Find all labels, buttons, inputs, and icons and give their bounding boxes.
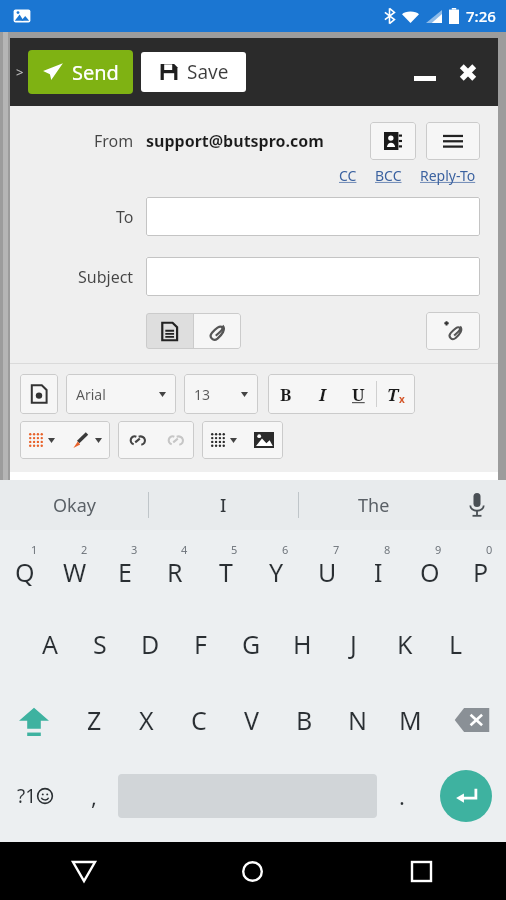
staticText: C [191, 703, 207, 737]
staticText: G [242, 627, 261, 661]
button[interactable]: Voice input [448, 480, 506, 530]
staticText: 1 [31, 542, 38, 557]
button[interactable]: Home [168, 842, 337, 900]
button[interactable]: Shift [0, 682, 68, 758]
button[interactable]: U [340, 375, 376, 413]
staticText: J [350, 627, 357, 661]
staticText: X [139, 703, 154, 737]
button[interactable]: G [226, 606, 277, 682]
staticText: N [348, 703, 368, 737]
button[interactable]: V [225, 682, 278, 758]
button[interactable]: Z [68, 682, 120, 758]
button[interactable]: Okay [0, 480, 148, 530]
staticText: Arial [76, 385, 106, 404]
staticText: Send [72, 59, 119, 86]
button[interactable]: ?1 [0, 758, 69, 834]
button[interactable]: Body [146, 313, 193, 349]
button[interactable]: A [25, 606, 75, 682]
button[interactable]: 6 [251, 530, 302, 606]
button[interactable]: M [384, 682, 437, 758]
staticText: support@butspro.com [146, 130, 324, 152]
staticText: T [387, 383, 399, 406]
staticText: R [167, 555, 183, 589]
staticText: O [420, 555, 440, 589]
button[interactable]: BCC [371, 166, 406, 185]
button[interactable]: Save [141, 52, 246, 92]
button[interactable]: Menu [426, 122, 480, 160]
staticText: B [296, 703, 313, 737]
button[interactable]: 1 [0, 530, 50, 606]
button[interactable]: I [304, 375, 340, 413]
staticText: F [194, 627, 207, 661]
staticText: T [219, 555, 233, 589]
button[interactable]: 8 [353, 530, 404, 606]
button[interactable]: Insert table [202, 432, 245, 448]
button[interactable]: Subject [146, 257, 480, 296]
button[interactable]: L [430, 606, 481, 682]
staticText: . [399, 781, 405, 811]
staticText: From [94, 130, 134, 152]
button[interactable]: 0 [455, 530, 506, 606]
button[interactable]: Recents [337, 842, 506, 900]
button[interactable]: N [331, 682, 384, 758]
button[interactable]: , [69, 758, 118, 834]
button[interactable]: Insert link [118, 422, 156, 458]
staticText: 6 [282, 542, 289, 557]
button[interactable]: Clear formatting [377, 375, 415, 413]
staticText: x [399, 392, 405, 406]
button[interactable]: D [125, 606, 175, 682]
staticText: E [118, 555, 132, 589]
button[interactable]: Backspace [437, 682, 506, 758]
staticText: 4 [181, 542, 188, 557]
button[interactable]: To [146, 197, 480, 236]
button[interactable]: Enter [440, 770, 492, 822]
staticText: 0 [486, 542, 493, 557]
button[interactable]: Reply-To [416, 166, 480, 185]
staticText: M [399, 703, 422, 737]
button[interactable]: Highlight color [63, 430, 110, 450]
button[interactable]: 4 [150, 530, 200, 606]
button[interactable]: Back [0, 842, 168, 900]
staticText: H [293, 627, 312, 661]
button[interactable]: Minimize [408, 55, 442, 89]
button[interactable]: The [299, 480, 448, 530]
button[interactable]: H [277, 606, 328, 682]
staticText: Save [187, 59, 229, 85]
button[interactable]: K [379, 606, 430, 682]
button[interactable]: 13 [184, 374, 258, 414]
button[interactable]: Add attachment [426, 312, 480, 350]
button[interactable]: Contacts [370, 122, 416, 160]
staticText: Q [15, 555, 35, 589]
button[interactable]: S [75, 606, 125, 682]
button[interactable]: C [172, 682, 225, 758]
button[interactable]: 9 [404, 530, 455, 606]
button[interactable]: Source code [20, 374, 58, 414]
button[interactable]: Remove link [156, 422, 194, 458]
staticText: , [91, 781, 97, 811]
button[interactable]: B [268, 375, 304, 413]
staticText: 7:26 [466, 6, 496, 26]
staticText: I [319, 383, 326, 406]
button[interactable]: CC [335, 166, 361, 185]
button[interactable]: Attachments [194, 313, 241, 349]
button[interactable]: Arial [66, 374, 176, 414]
button[interactable]: Send [28, 50, 133, 94]
staticText: The [358, 493, 390, 518]
button[interactable]: F [175, 606, 226, 682]
button[interactable]: . [377, 758, 426, 834]
staticText: A [42, 627, 58, 661]
button[interactable]: 7 [302, 530, 353, 606]
button[interactable]: B [278, 682, 331, 758]
button[interactable]: 5 [200, 530, 251, 606]
staticText: I [220, 493, 227, 518]
button[interactable]: Close [450, 54, 486, 90]
button[interactable]: 2 [50, 530, 100, 606]
button[interactable]: 3 [100, 530, 150, 606]
button[interactable]: I [149, 480, 298, 530]
button[interactable]: X [120, 682, 172, 758]
button[interactable]: Text color [20, 432, 63, 448]
button[interactable]: Insert image [245, 422, 283, 458]
staticText: Subject [78, 266, 134, 288]
button[interactable]: J [328, 606, 379, 682]
